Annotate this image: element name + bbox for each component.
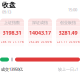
- staticText: 14043.17: [29, 29, 51, 36]
- staticText: 3281.49: [58, 29, 77, 36]
- staticText: +0.66%: [40, 40, 51, 44]
- button[interactable]: 深证成指: [28, 18, 52, 50]
- staticText: 深证成指: [32, 20, 48, 25]
- staticText: 成交13950亿: [1, 66, 23, 72]
- button[interactable]: 上证指数: [0, 18, 24, 50]
- staticText: 较上一日+1: [58, 66, 78, 72]
- staticText: 15:00: [68, 7, 77, 12]
- staticText: 上证指数: [4, 20, 20, 25]
- button[interactable]: 创业板指: [56, 18, 80, 50]
- staticText: 09-13: [2, 9, 11, 14]
- staticText: 收盘: [2, 1, 16, 9]
- staticText: +92.46: [28, 40, 39, 44]
- staticText: +1.17%: [12, 40, 23, 44]
- staticText: 3198.31: [2, 29, 21, 36]
- staticText: +0.65%: [68, 40, 79, 44]
- staticText: +21.11: [56, 40, 67, 44]
- staticText: +38.10: [0, 40, 11, 44]
- staticText: 创业板指: [60, 20, 76, 25]
